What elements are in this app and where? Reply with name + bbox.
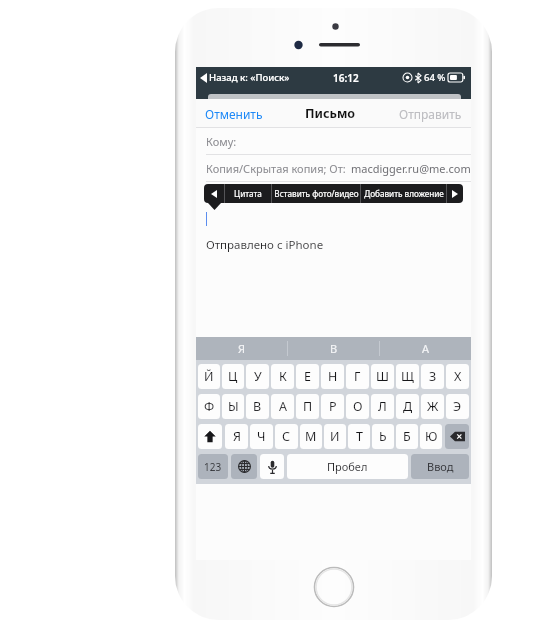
staticText: 16:12	[333, 71, 359, 85]
staticText: Т	[356, 428, 363, 445]
button[interactable]: З	[421, 364, 444, 389]
staticText: 64 %	[424, 71, 446, 84]
button[interactable]: Э	[446, 394, 469, 419]
staticText: Письмо	[305, 105, 356, 122]
staticText: Пробел	[327, 459, 368, 474]
staticText: Ж	[427, 398, 439, 415]
button[interactable]: Отправить	[390, 101, 471, 127]
staticText: Назад к: «Поиск»	[209, 71, 290, 84]
staticText: Й	[204, 368, 214, 385]
staticText: Д	[403, 398, 413, 415]
staticText: Ь	[379, 428, 387, 445]
button[interactable]: Н	[321, 364, 344, 389]
staticText: Х	[454, 368, 462, 385]
staticText: О	[353, 398, 363, 415]
button[interactable]: Ю	[420, 424, 442, 449]
staticText: С	[282, 428, 291, 445]
button[interactable]: Следующее	[447, 184, 463, 203]
button[interactable]: Х	[446, 364, 469, 389]
button[interactable]: Пробел	[287, 454, 408, 479]
button[interactable]: Я	[225, 424, 248, 449]
staticText: Ш	[376, 368, 389, 385]
staticText: Я	[238, 341, 246, 356]
button[interactable]: Ж	[421, 394, 444, 419]
staticText: К	[279, 368, 287, 385]
staticText: Кому:	[206, 134, 237, 149]
staticText: Я	[233, 428, 241, 445]
button[interactable]: О	[346, 394, 369, 419]
staticText: macdigger.ru@me.com	[351, 161, 471, 176]
button[interactable]: Удалить	[445, 424, 469, 449]
button[interactable]: Shift	[198, 424, 222, 449]
staticText: У	[254, 368, 262, 385]
button[interactable]: А	[271, 394, 294, 419]
staticText: М	[305, 428, 317, 445]
staticText: З	[429, 368, 437, 385]
button[interactable]: В	[246, 394, 269, 419]
button[interactable]: П	[296, 394, 319, 419]
staticText: Отменить	[205, 106, 263, 122]
button[interactable]: Д	[396, 394, 419, 419]
staticText: 123	[204, 460, 222, 474]
staticText: Г	[354, 368, 361, 385]
button[interactable]: Щ	[396, 364, 419, 389]
button[interactable]: Ц	[222, 364, 244, 389]
button[interactable]: Сменить язык	[231, 454, 257, 479]
button[interactable]: Ш	[371, 364, 394, 389]
button[interactable]: Кому:	[196, 128, 471, 154]
staticText: И	[330, 428, 340, 445]
button[interactable]: Ь	[372, 424, 394, 449]
button[interactable]: Отменить	[196, 101, 272, 127]
staticText: Добавить вложение	[364, 188, 444, 199]
staticText: Л	[378, 398, 387, 415]
button[interactable]: Ч	[250, 424, 273, 449]
staticText: Ф	[204, 398, 215, 415]
staticText: Ввод	[427, 459, 454, 474]
button[interactable]: Предыдущее	[204, 184, 224, 203]
button[interactable]: И	[324, 424, 346, 449]
button[interactable]: Я	[196, 337, 287, 360]
button[interactable]: Копия/Скрытая копия; От:	[196, 155, 471, 181]
staticText: Б	[403, 428, 411, 445]
staticText: Ю	[425, 428, 438, 445]
staticText: Щ	[401, 368, 414, 385]
staticText: Отправить	[399, 106, 462, 122]
button[interactable]: Й	[198, 364, 220, 389]
button[interactable]: 123	[198, 454, 228, 479]
button[interactable]: Л	[371, 394, 394, 419]
button[interactable]: Добавить вложение	[361, 184, 446, 203]
button[interactable]: Диктовка	[260, 454, 284, 479]
button[interactable]: Е	[296, 364, 319, 389]
button[interactable]: Вставить фото/видео	[272, 184, 360, 203]
staticText: Ц	[228, 368, 238, 385]
button[interactable]: С	[275, 424, 298, 449]
button[interactable]: Б	[396, 424, 418, 449]
staticText: Отправлено с iPhone	[206, 237, 324, 253]
button[interactable]: Цитата	[225, 184, 271, 203]
button[interactable]: В	[288, 337, 379, 360]
staticText: Э	[453, 398, 462, 415]
staticText: А	[279, 398, 287, 415]
button[interactable]: Ввод	[411, 454, 469, 479]
staticText: В	[330, 341, 338, 356]
staticText: Ы	[228, 398, 239, 415]
staticText: Вставить фото/видео	[274, 188, 359, 199]
staticText: Цитата	[234, 188, 262, 199]
button[interactable]: Ф	[198, 394, 220, 419]
button[interactable]: К	[271, 364, 294, 389]
button[interactable]: Р	[321, 394, 344, 419]
staticText: В	[253, 398, 262, 415]
staticText: Е	[304, 368, 311, 385]
button[interactable]: У	[246, 364, 269, 389]
staticText: Н	[328, 368, 338, 385]
staticText: П	[303, 398, 313, 415]
button[interactable]: М	[300, 424, 322, 449]
button[interactable]: Ы	[222, 394, 244, 419]
staticText: Р	[329, 398, 337, 415]
staticText: Ч	[257, 428, 266, 445]
button[interactable]: Т	[348, 424, 370, 449]
button[interactable]: А	[380, 337, 471, 360]
staticText: А	[422, 341, 430, 356]
button[interactable]: Г	[346, 364, 369, 389]
staticText: Копия/Скрытая копия; От:	[206, 161, 346, 176]
